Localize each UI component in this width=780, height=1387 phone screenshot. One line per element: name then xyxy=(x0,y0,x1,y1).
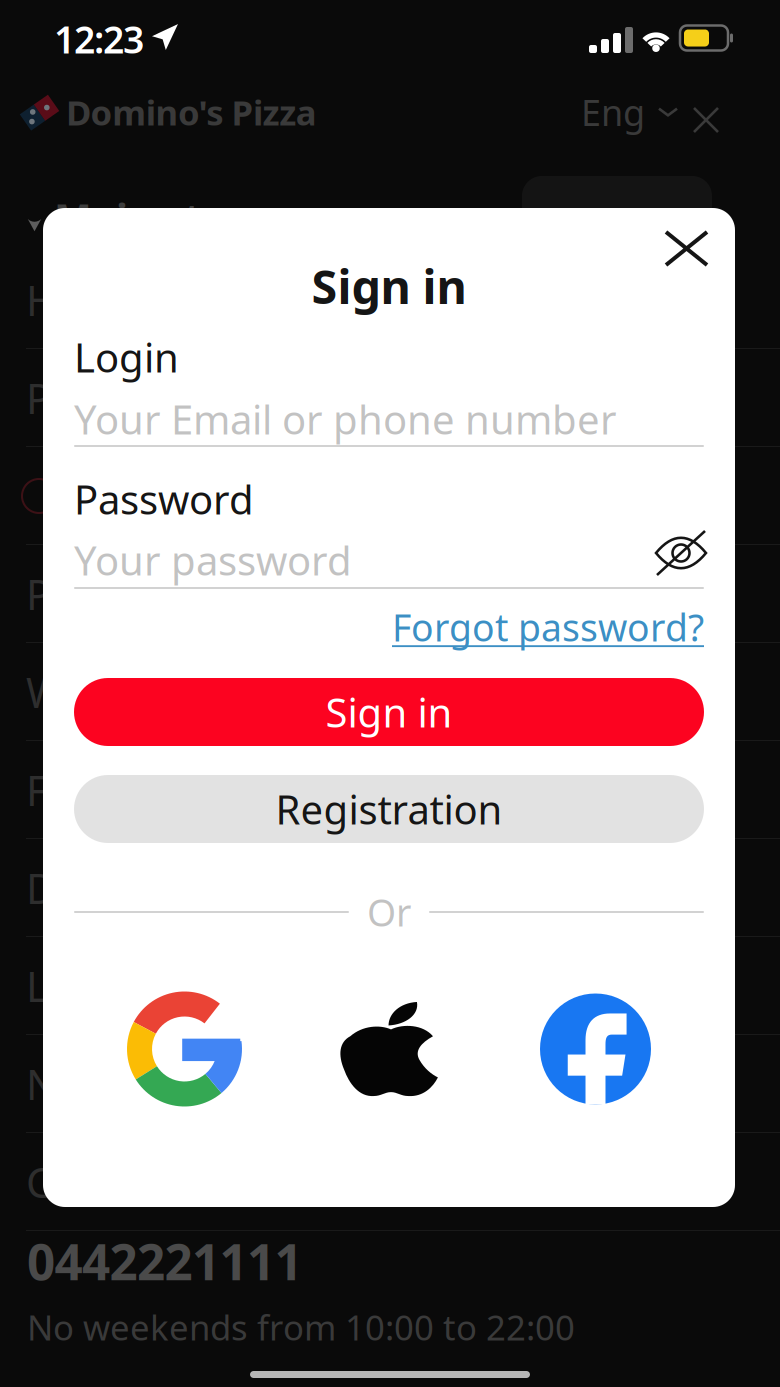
button[interactable]: Continue with Facebook xyxy=(540,993,651,1104)
staticText: New xyxy=(26,1057,111,1111)
button[interactable]: Eng xyxy=(581,88,677,136)
staticText: Eng xyxy=(581,88,645,136)
staticText: Sign in xyxy=(325,685,452,738)
button[interactable]: Show password xyxy=(643,525,719,581)
staticText: 0442221111 xyxy=(27,1228,302,1294)
button[interactable]: Domino's Pizza xyxy=(23,89,317,135)
button[interactable]: Sign in xyxy=(74,678,704,746)
staticText: Domino's Pizza xyxy=(66,89,317,135)
staticText: Wings xyxy=(26,665,146,719)
staticText: Contacts xyxy=(26,1155,196,1209)
staticText: Sign in xyxy=(311,255,466,317)
button[interactable]: Continue with Apple xyxy=(342,1000,440,1098)
staticText: Desserts xyxy=(26,861,194,915)
staticText: No weekends from 10:00 to 22:00 xyxy=(27,1304,575,1350)
staticText: Pizza xyxy=(26,371,123,425)
button[interactable]: Close xyxy=(646,212,727,285)
staticText: Your password xyxy=(74,533,352,586)
button[interactable]: Registration xyxy=(74,775,704,843)
staticText: Fries & Sides xyxy=(26,763,272,817)
staticText: Forgot password? xyxy=(392,602,704,652)
staticText: Lunch menu xyxy=(26,959,271,1013)
staticText: Hot offers xyxy=(26,273,221,327)
button[interactable]: Forgot password? xyxy=(392,602,704,652)
staticText: Or xyxy=(367,887,411,937)
staticText: Registration xyxy=(275,782,502,835)
staticText: Your Email or phone number xyxy=(74,392,617,445)
button[interactable]: Close menu xyxy=(684,98,728,142)
staticText: Main st. xyxy=(54,190,212,243)
staticText: Combo xyxy=(70,469,210,523)
staticText: Login xyxy=(74,330,179,383)
staticText: Password xyxy=(74,472,254,525)
staticText: 12:23 xyxy=(54,14,144,64)
staticText: Pasta xyxy=(26,567,132,621)
button[interactable]: Continue with Google xyxy=(127,991,242,1106)
